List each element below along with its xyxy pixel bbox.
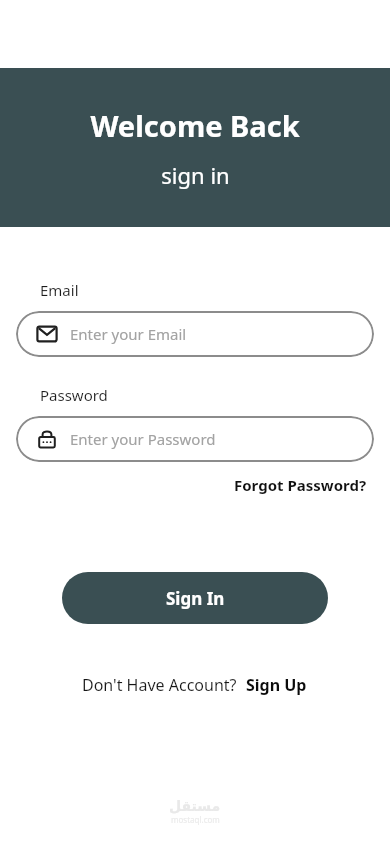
staticText: Enter your Email xyxy=(70,324,187,344)
button[interactable]: Forgot Password? xyxy=(232,473,369,497)
staticText: Forgot Password? xyxy=(234,475,367,495)
staticText: mostaql.com xyxy=(171,814,220,825)
staticText: Don't Have Account? xyxy=(82,674,237,696)
staticText: Welcome Back xyxy=(90,106,300,145)
other: Email xyxy=(37,324,57,344)
staticText: Email xyxy=(40,280,79,300)
staticText: Sign In xyxy=(166,587,225,610)
button[interactable]: Password xyxy=(16,416,374,462)
staticText: Password xyxy=(40,385,108,405)
button[interactable]: Sign In xyxy=(62,572,328,624)
button[interactable]: Sign Up xyxy=(244,672,309,698)
staticText: Sign Up xyxy=(246,674,307,696)
staticText: Enter your Password xyxy=(70,429,216,449)
button[interactable]: Email xyxy=(16,311,374,357)
staticText: sign in xyxy=(161,160,230,190)
staticText: مستقل xyxy=(169,798,221,814)
other: Password xyxy=(37,429,57,449)
